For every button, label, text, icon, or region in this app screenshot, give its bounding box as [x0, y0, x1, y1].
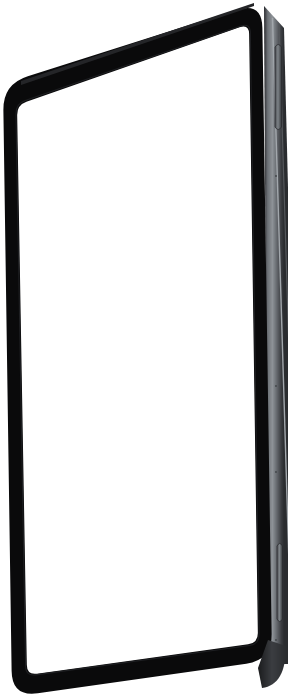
other: Tablet product photo — [0, 0, 288, 700]
